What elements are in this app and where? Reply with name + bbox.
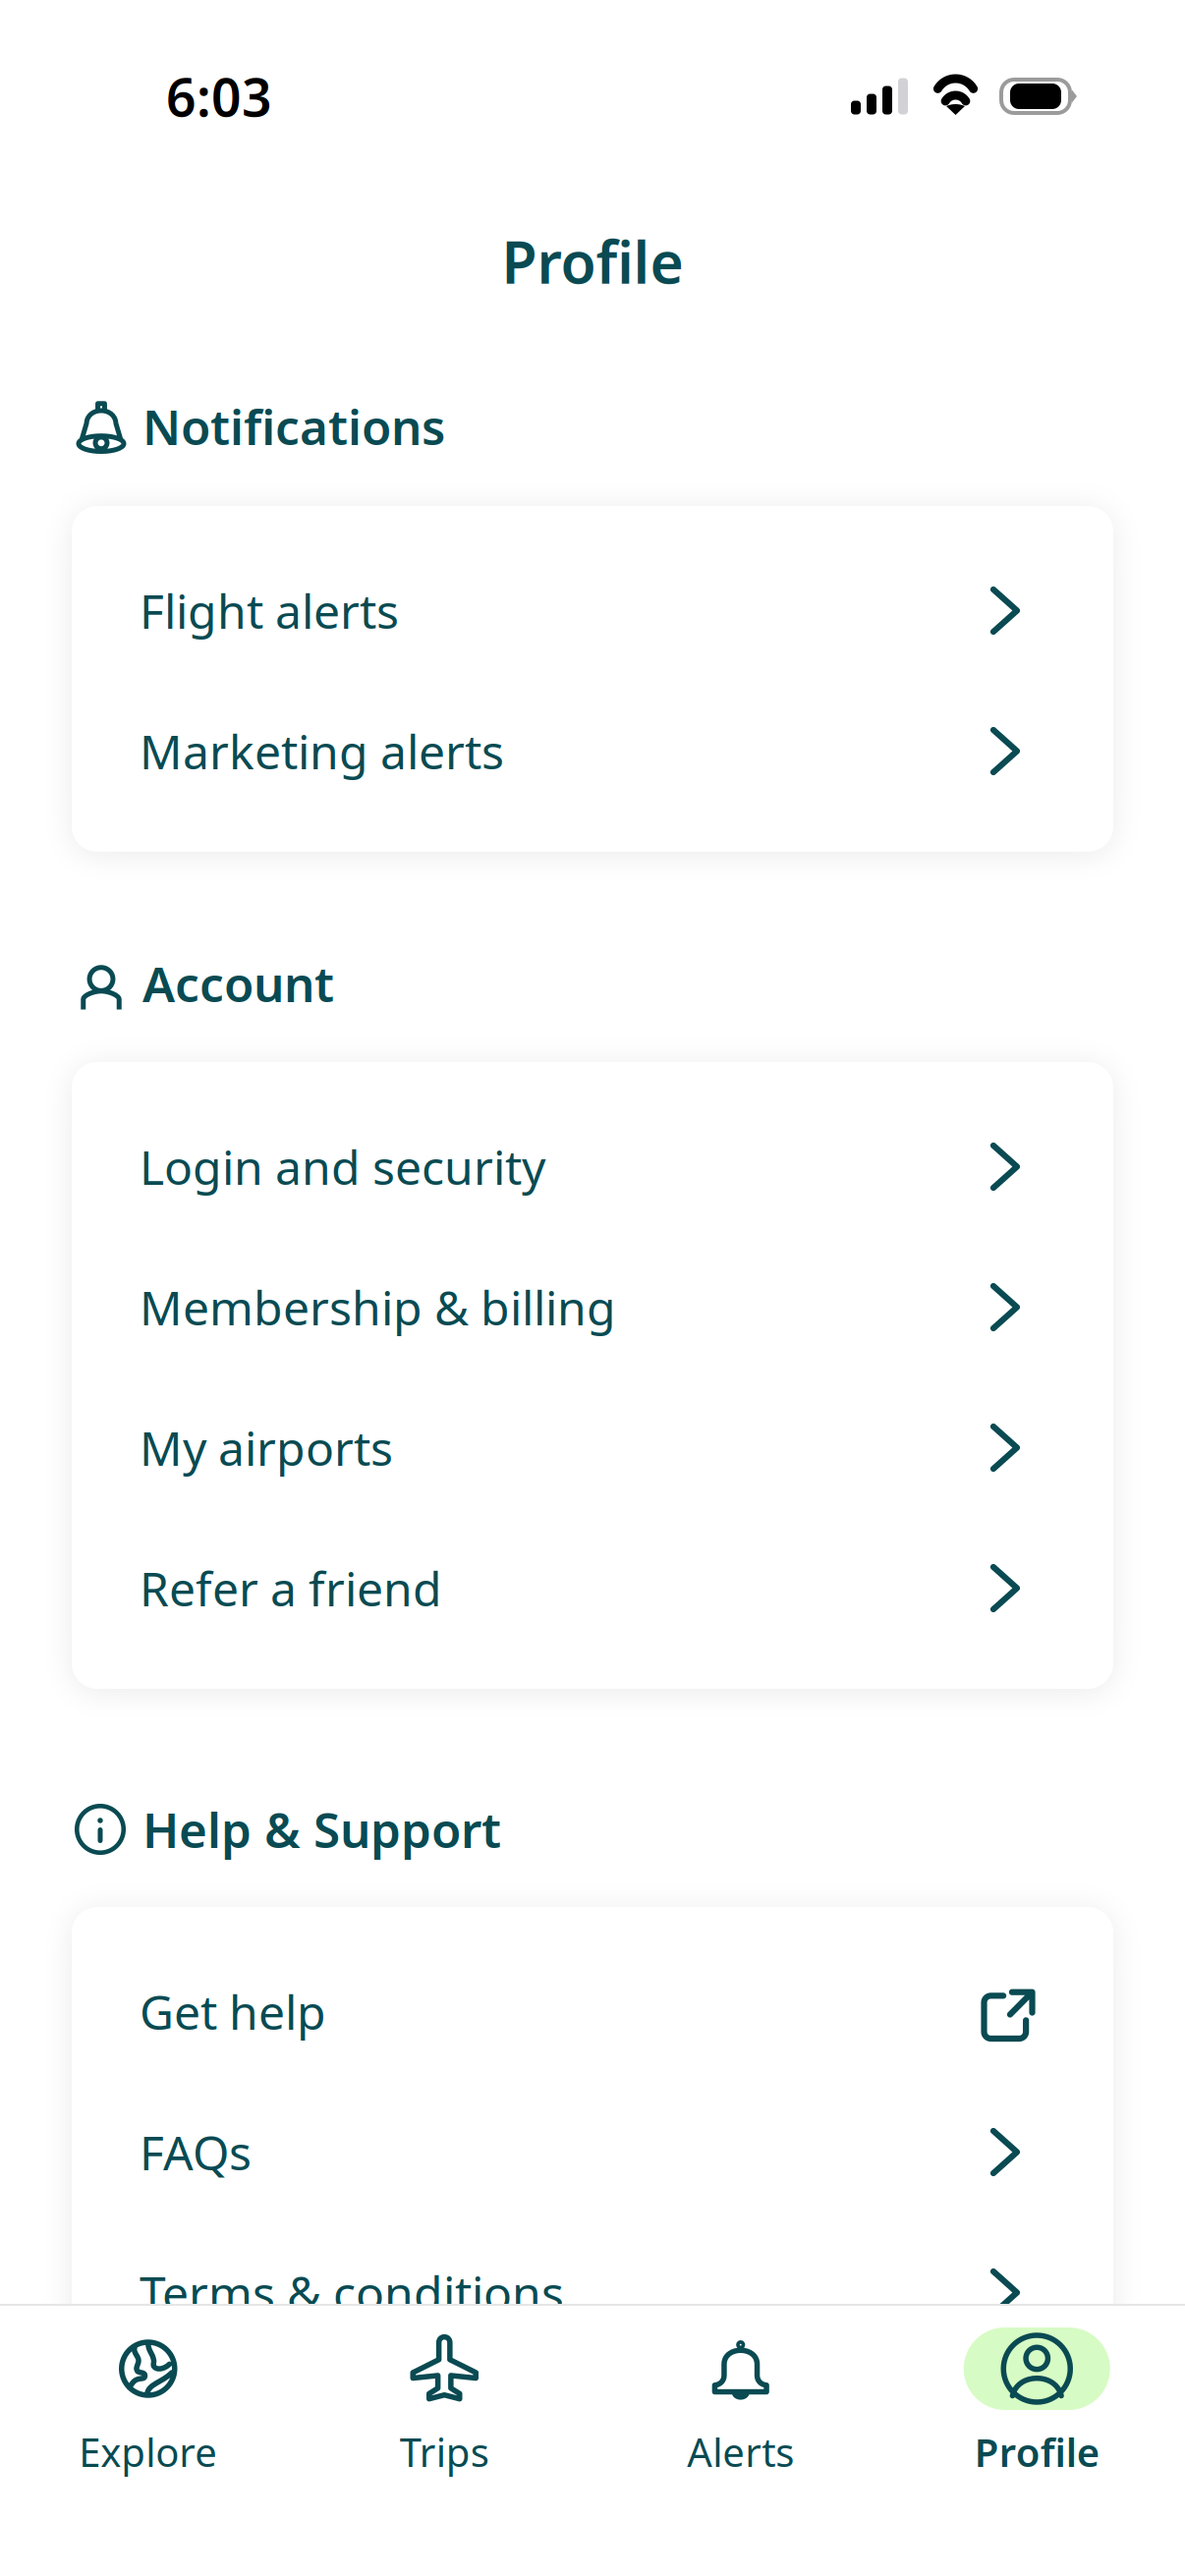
button[interactable]: Refer a friend bbox=[72, 1518, 1113, 1658]
staticText: Explore bbox=[79, 2426, 217, 2478]
button[interactable]: Explore bbox=[0, 2306, 296, 2478]
button[interactable]: Alerts bbox=[592, 2306, 889, 2478]
staticText: Get help bbox=[140, 1980, 326, 2043]
button[interactable]: Privacy policy bbox=[72, 2363, 1113, 2503]
staticText: Terms & conditions bbox=[140, 2261, 564, 2324]
staticText: Flight alerts bbox=[140, 579, 399, 642]
button[interactable]: Profile bbox=[889, 2306, 1185, 2478]
staticText: Membership & billing bbox=[140, 1276, 616, 1338]
button[interactable]: My airports bbox=[72, 1377, 1113, 1518]
button[interactable]: FAQs bbox=[72, 2082, 1113, 2222]
staticText: 6:03 bbox=[166, 62, 272, 131]
staticText: Profile bbox=[975, 2426, 1099, 2478]
button[interactable]: Membership & billing bbox=[72, 1237, 1113, 1377]
button[interactable]: Login and security bbox=[72, 1096, 1113, 1237]
staticText: Account bbox=[142, 951, 334, 1015]
staticText: Profile bbox=[502, 223, 683, 300]
staticText: Help & Support bbox=[142, 1797, 501, 1861]
button[interactable]: Terms & conditions bbox=[72, 2222, 1113, 2363]
staticText: Refer a friend bbox=[140, 1557, 442, 1619]
staticText: Notifications bbox=[142, 394, 445, 458]
button[interactable]: Trips bbox=[296, 2306, 592, 2478]
staticText: FAQs bbox=[140, 2121, 252, 2183]
button[interactable]: Flight alerts bbox=[72, 540, 1113, 681]
staticText: My airports bbox=[140, 1416, 393, 1479]
button[interactable]: Get help bbox=[72, 1941, 1113, 2082]
staticText: Alerts bbox=[687, 2426, 794, 2478]
staticText: Login and security bbox=[140, 1135, 545, 1198]
staticText: Marketing alerts bbox=[140, 720, 504, 782]
staticText: Privacy policy bbox=[140, 2402, 435, 2464]
button[interactable]: Marketing alerts bbox=[72, 681, 1113, 821]
staticText: Trips bbox=[400, 2426, 489, 2478]
